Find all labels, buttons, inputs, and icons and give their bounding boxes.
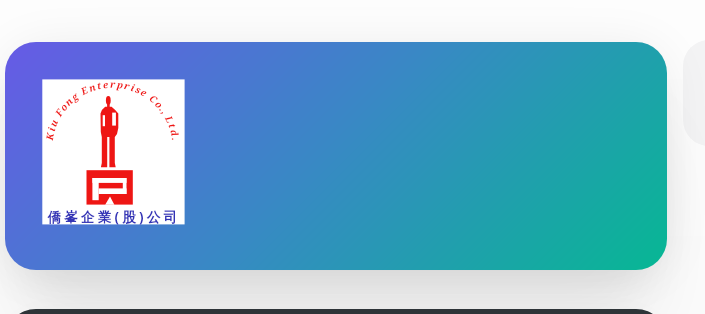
button[interactable]: Kiu Fong Enterprise Co., Ltd. (5, 42, 667, 270)
button[interactable]: Next company (5, 309, 667, 314)
